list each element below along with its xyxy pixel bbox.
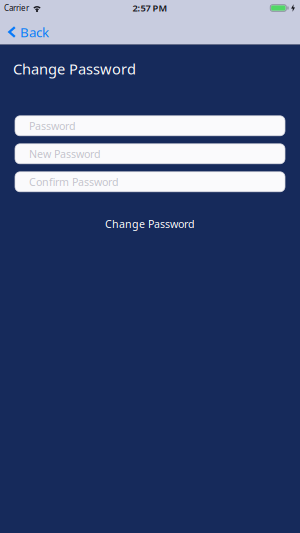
button[interactable]: Back (0, 23, 49, 41)
button[interactable]: New Password (15, 144, 285, 164)
staticText: Confirm Password (29, 175, 119, 189)
button[interactable]: Change Password (105, 218, 195, 230)
staticText: Change Password (105, 217, 195, 231)
button[interactable]: Confirm Password (15, 172, 285, 192)
staticText: Carrier (4, 3, 29, 13)
button[interactable]: Password (15, 116, 285, 136)
staticText: 2:57 PM (132, 2, 167, 14)
staticText: Password (29, 119, 76, 133)
staticText: New Password (29, 147, 101, 161)
staticText: Back (20, 23, 49, 41)
staticText: Change Password (13, 59, 136, 79)
